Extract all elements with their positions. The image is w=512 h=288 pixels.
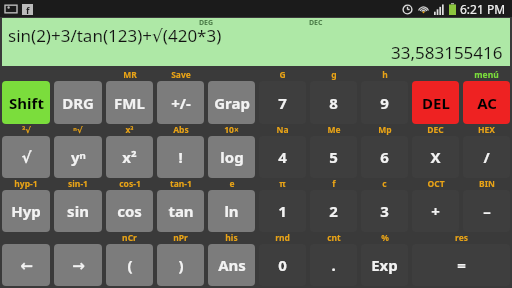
button[interactable]: Shift [2, 81, 50, 124]
staticText: c [382, 178, 387, 190]
staticText: cos [117, 201, 142, 221]
staticText: DEC [309, 18, 323, 28]
button[interactable]: FML [106, 81, 153, 124]
staticText: BIN [479, 178, 495, 190]
staticText: Save [171, 69, 191, 81]
button[interactable]: – [463, 190, 510, 232]
staticText: e [229, 178, 235, 190]
staticText: 1 [278, 201, 287, 221]
staticText: HEX [478, 124, 495, 136]
button[interactable]: Ans [208, 244, 255, 286]
button[interactable]: DRG [54, 81, 102, 124]
staticText: g [331, 69, 337, 81]
staticText: % [381, 232, 389, 244]
button[interactable]: 9 [361, 81, 408, 124]
staticText: tan-1 [170, 178, 192, 190]
staticText: res [455, 232, 468, 244]
staticText: Grap [214, 93, 250, 113]
button[interactable]: ( [106, 244, 153, 286]
button[interactable]: 5 [310, 136, 357, 178]
staticText: – [483, 201, 491, 221]
staticText: MR [123, 69, 137, 81]
staticText: 2 [329, 201, 338, 221]
button[interactable]: 7 [259, 81, 306, 124]
button[interactable]: ) [157, 244, 204, 286]
button[interactable]: x² [106, 136, 153, 178]
staticText: sin [67, 201, 89, 221]
staticText: Abs [173, 124, 189, 136]
staticText: FML [114, 93, 145, 113]
button[interactable]: 0 [259, 244, 306, 286]
staticText: h [382, 69, 388, 81]
staticText: cnt [327, 232, 341, 244]
button[interactable]: 3 [361, 190, 408, 232]
staticText: hyp-1 [14, 178, 38, 190]
button[interactable]: X [412, 136, 459, 178]
staticText: ! [178, 147, 183, 167]
staticText: ) [178, 255, 184, 275]
staticText: AC [477, 93, 497, 113]
button[interactable]: + [412, 190, 459, 232]
staticText: + [431, 201, 440, 221]
button[interactable]: ← [2, 244, 50, 286]
staticText: Hyp [11, 201, 41, 221]
staticText: → [72, 257, 85, 274]
staticText: π [279, 178, 286, 190]
staticText: nPr [173, 232, 188, 244]
staticText: Ans [218, 255, 246, 275]
button[interactable]: 6 [361, 136, 408, 178]
button[interactable]: tan [157, 190, 204, 232]
staticText: ← [20, 257, 33, 274]
button[interactable]: cos [106, 190, 153, 232]
button[interactable]: DEL [412, 81, 459, 124]
staticText: 9 [380, 93, 389, 113]
button[interactable]: ln [208, 190, 255, 232]
staticText: . [331, 255, 336, 275]
staticText: ⁿ√ [73, 124, 83, 136]
button[interactable]: Exp [361, 244, 408, 286]
button[interactable]: AC [463, 81, 510, 124]
button[interactable]: sin [54, 190, 102, 232]
staticText: x² [122, 147, 137, 167]
button[interactable]: 4 [259, 136, 306, 178]
other: Facebook [22, 4, 33, 15]
staticText: 33,583155416 [391, 41, 503, 64]
staticText: 4 [278, 147, 287, 167]
button[interactable]: 8 [310, 81, 357, 124]
button[interactable]: √ [2, 136, 50, 178]
staticText: √ [21, 149, 32, 166]
button[interactable]: 1 [259, 190, 306, 232]
button[interactable]: Hyp [2, 190, 50, 232]
staticText: DEG [199, 18, 214, 28]
staticText: ( [127, 255, 133, 275]
button[interactable]: = [412, 244, 510, 286]
staticText: yⁿ [71, 147, 86, 167]
staticText: Me [327, 124, 341, 136]
button[interactable]: / [463, 136, 510, 178]
staticText: tan [168, 201, 194, 221]
staticText: X [430, 147, 441, 167]
button[interactable]: DEG [2, 18, 510, 66]
staticText: sin(2)+3/tan(123)+√(420*3) [8, 24, 222, 47]
button[interactable]: 2 [310, 190, 357, 232]
staticText: 6:21 PM [460, 1, 506, 17]
button[interactable]: Grap [208, 81, 255, 124]
staticText: DEL [422, 93, 450, 113]
staticText: f [332, 178, 336, 190]
button[interactable]: ! [157, 136, 204, 178]
staticText: +/- [171, 93, 191, 113]
button[interactable]: → [54, 244, 102, 286]
staticText: 7 [278, 93, 287, 113]
button[interactable]: +/- [157, 81, 204, 124]
staticText: ³√ [22, 124, 31, 136]
button[interactable]: yⁿ [54, 136, 102, 178]
staticText: 10× [224, 124, 239, 136]
staticText: 3 [380, 201, 389, 221]
staticText: rnd [275, 232, 290, 244]
staticText: 6 [380, 147, 389, 167]
button[interactable]: log [208, 136, 255, 178]
staticText: 0 [278, 255, 287, 275]
staticText: DRG [62, 93, 94, 113]
staticText: ln [224, 201, 239, 221]
button[interactable]: . [310, 244, 357, 286]
